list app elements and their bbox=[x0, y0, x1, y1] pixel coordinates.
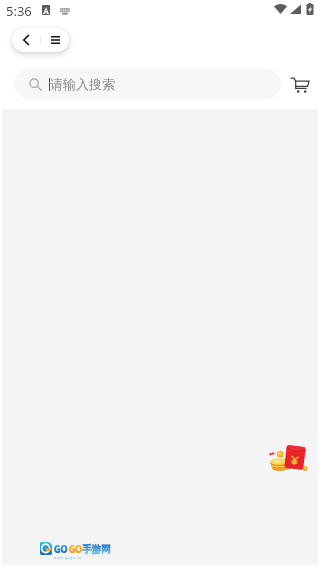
button[interactable]: Menu bbox=[41, 28, 69, 52]
button[interactable]: 请输入搜索 bbox=[14, 68, 281, 100]
staticText: 5:36 bbox=[6, 2, 32, 20]
staticText: 请输入搜索 bbox=[50, 76, 115, 92]
staticText: 手游网 bbox=[82, 543, 110, 556]
button[interactable]: Shopping cart bbox=[287, 71, 313, 97]
staticText: w w w . g o g o . c n bbox=[54, 555, 81, 559]
staticText: GO bbox=[54, 542, 68, 556]
button[interactable]: Back bbox=[12, 28, 40, 52]
button[interactable]: Red packet bbox=[264, 444, 310, 478]
staticText: GO bbox=[68, 542, 82, 556]
